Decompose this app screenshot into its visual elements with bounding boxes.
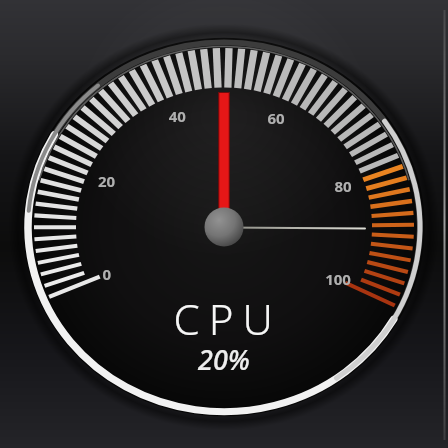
button[interactable] <box>0 0 448 448</box>
